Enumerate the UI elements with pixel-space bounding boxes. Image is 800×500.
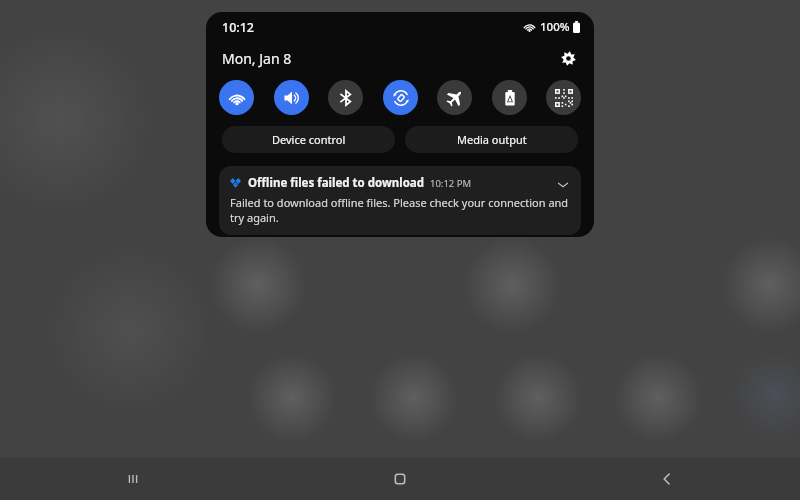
button[interactable]: Auto rotate [383, 80, 418, 115]
button[interactable]: Airplane mode [437, 80, 472, 115]
button[interactable]: Bluetooth [328, 80, 363, 115]
button[interactable]: Sound [274, 80, 309, 115]
staticText: Failed to download offline files. Please… [230, 195, 573, 225]
staticText: 10:12 PM [430, 177, 472, 190]
button[interactable]: Offline files failed to download [219, 166, 581, 235]
button[interactable]: Scan QR code [546, 80, 581, 115]
button[interactable]: Device control [222, 126, 395, 153]
staticText: Device control [272, 132, 346, 147]
staticText: 100% [540, 19, 570, 35]
staticText: Media output [457, 132, 527, 147]
button[interactable]: Wi-Fi [219, 80, 254, 115]
button[interactable]: Back [533, 458, 800, 500]
button[interactable]: Settings [554, 44, 582, 72]
staticText: 10:12 [222, 19, 255, 36]
staticText: Mon, Jan 8 [222, 49, 292, 68]
button[interactable]: Media output [405, 126, 578, 153]
button[interactable]: Expand notification [553, 175, 573, 195]
button[interactable]: Home [266, 458, 533, 500]
button[interactable]: Battery saver [492, 80, 527, 115]
button[interactable]: Recent apps [0, 458, 266, 500]
staticText: Offline files failed to download [248, 175, 425, 191]
